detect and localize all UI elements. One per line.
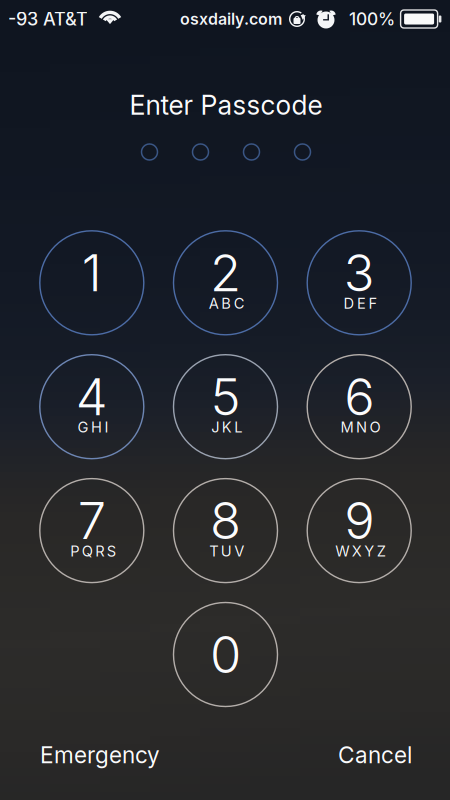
staticText: JKL xyxy=(211,418,242,436)
staticText: 3 xyxy=(344,242,375,303)
button[interactable]: Cancel xyxy=(302,732,412,778)
staticText: MNO xyxy=(340,418,380,436)
staticText: DEF xyxy=(343,294,377,312)
staticText: Cancel xyxy=(338,741,412,769)
staticText: 7 xyxy=(78,490,106,551)
button[interactable]: 3 xyxy=(307,231,411,335)
staticText: Enter Passcode xyxy=(129,89,322,121)
button[interactable]: 2 xyxy=(173,231,277,335)
staticText: PQRS xyxy=(70,542,116,560)
button[interactable]: 0 xyxy=(173,602,277,706)
staticText: Emergency xyxy=(40,741,160,769)
button[interactable]: Emergency xyxy=(40,732,190,778)
button[interactable]: 5 xyxy=(173,355,277,459)
button[interactable]: 6 xyxy=(307,355,411,459)
staticText: 9 xyxy=(344,490,374,551)
staticText: 4 xyxy=(76,366,108,427)
staticText: 8 xyxy=(210,490,241,551)
staticText: ABC xyxy=(209,294,245,312)
staticText: 5 xyxy=(210,366,240,427)
staticText: TUV xyxy=(209,542,244,560)
staticText: 1 xyxy=(82,242,102,303)
button[interactable]: 9 xyxy=(307,479,411,583)
staticText: 6 xyxy=(344,366,374,427)
button[interactable]: 1 xyxy=(40,231,144,335)
staticText: WXYZ xyxy=(335,542,386,560)
staticText: osxdaily.com xyxy=(180,9,282,29)
button[interactable]: 4 xyxy=(40,355,144,459)
button[interactable]: 7 xyxy=(40,479,144,583)
staticText: GHI xyxy=(77,418,108,436)
staticText: -93 AT&T xyxy=(8,8,88,30)
staticText: 0 xyxy=(210,624,241,685)
button[interactable]: 8 xyxy=(173,479,277,583)
staticText: 100% xyxy=(349,8,395,29)
staticText: 2 xyxy=(210,242,241,303)
